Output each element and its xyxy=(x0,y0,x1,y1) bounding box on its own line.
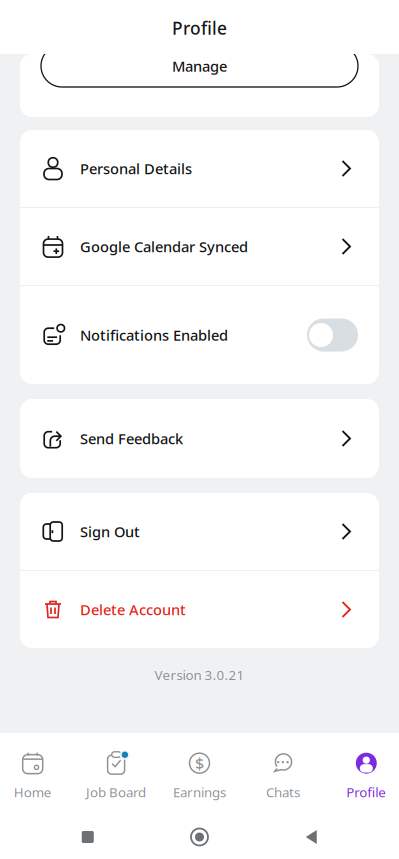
staticText: Sign Out xyxy=(80,522,140,541)
staticText: Delete Account xyxy=(80,600,186,619)
staticText: Send Feedback xyxy=(80,429,183,448)
button[interactable]: Home xyxy=(0,733,74,815)
staticText: Google Calendar Synced xyxy=(80,237,248,256)
staticText: Earnings xyxy=(173,783,226,801)
button[interactable]: Back xyxy=(287,815,335,859)
button[interactable]: Sign Out xyxy=(20,493,379,570)
button[interactable]: Job Board xyxy=(74,733,158,815)
button[interactable]: Delete Account xyxy=(20,571,379,648)
staticText: Notifications Enabled xyxy=(80,325,228,345)
staticText: Home xyxy=(14,783,52,801)
staticText: Version 3.0.21 xyxy=(154,666,244,684)
staticText: $ xyxy=(195,752,204,774)
button[interactable]: Manage xyxy=(20,45,379,87)
button[interactable]: Send Feedback xyxy=(20,399,379,478)
staticText: Job Board xyxy=(86,783,146,801)
button[interactable]: Google Calendar Synced xyxy=(20,208,379,285)
button[interactable]: Notifications Enabled xyxy=(20,286,379,384)
staticText: Chats xyxy=(266,783,300,801)
staticText: Profile xyxy=(346,783,386,801)
staticText: Personal Details xyxy=(80,159,192,178)
button[interactable]: $ xyxy=(158,733,241,815)
staticText: Profile xyxy=(172,16,227,39)
button[interactable]: Profile xyxy=(325,733,399,815)
staticText: Manage xyxy=(172,56,227,76)
button[interactable]: Personal Details xyxy=(20,130,379,207)
button[interactable]: Chats xyxy=(241,733,325,815)
button[interactable]: Home xyxy=(175,815,223,859)
button[interactable]: Recent apps xyxy=(64,815,112,859)
